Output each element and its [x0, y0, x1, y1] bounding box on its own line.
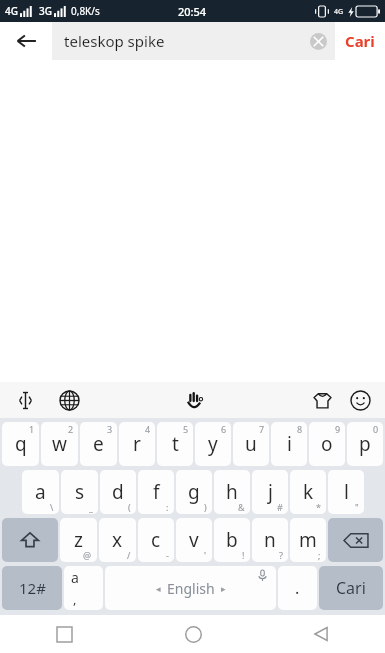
staticText: 2 [68, 423, 74, 435]
staticText: # [277, 501, 283, 513]
staticText: m [299, 527, 317, 553]
button[interactable]: Back [0, 22, 52, 60]
staticText: g [188, 479, 200, 505]
button[interactable]: f [138, 470, 174, 514]
button[interactable]: m [290, 518, 326, 562]
staticText: c [151, 527, 161, 553]
button[interactable]: Clear [301, 24, 335, 58]
button[interactable]: w [41, 422, 78, 466]
button[interactable]: . [278, 566, 317, 610]
staticText: \ [50, 501, 54, 513]
button[interactable]: a [64, 566, 103, 610]
button[interactable]: a [22, 470, 59, 514]
button[interactable]: u [233, 422, 269, 466]
staticText: n [264, 527, 276, 553]
staticText: / [127, 549, 131, 561]
button[interactable]: Backspace [328, 518, 383, 562]
button[interactable]: Cari [345, 22, 375, 60]
staticText: 3G [39, 4, 52, 18]
button[interactable]: k [290, 470, 326, 514]
staticText: ; [318, 549, 321, 561]
button[interactable]: Emoji [345, 385, 375, 415]
staticText: & [238, 501, 245, 513]
staticText: 8 [297, 423, 303, 435]
staticText: ◂ [156, 584, 161, 594]
button[interactable]: v [176, 518, 212, 562]
staticText: , [73, 590, 77, 608]
button[interactable]: b [214, 518, 250, 562]
button[interactable]: j [252, 470, 288, 514]
staticText: r [133, 431, 141, 457]
button[interactable]: c [138, 518, 174, 562]
staticText: 5 [183, 423, 189, 435]
button[interactable]: s [61, 470, 98, 514]
staticText: z [74, 527, 83, 553]
button[interactable]: Cursor [10, 385, 40, 415]
button[interactable]: Space [105, 566, 276, 610]
button[interactable]: Home [129, 615, 257, 653]
staticText: - [166, 549, 169, 561]
staticText: 3 [107, 423, 113, 435]
button[interactable]: p [347, 422, 383, 466]
staticText: ▸ [221, 584, 226, 594]
staticText: a [71, 568, 79, 587]
button[interactable]: Theme [307, 385, 337, 415]
staticText: ) [204, 501, 207, 513]
button[interactable]: teleskop spike [52, 22, 335, 60]
button[interactable]: q [2, 422, 39, 466]
staticText: 4 [145, 423, 151, 435]
button[interactable]: h [214, 470, 250, 514]
button[interactable]: Language [54, 385, 84, 415]
button[interactable]: Cari [319, 566, 383, 610]
button[interactable]: d [100, 470, 136, 514]
staticText: 1 [29, 423, 35, 435]
staticText: 4G [5, 4, 18, 18]
staticText: : [166, 501, 169, 513]
staticText: 6 [221, 423, 227, 435]
button[interactable]: z [60, 518, 97, 562]
staticText: ' [204, 549, 207, 561]
staticText: _ [89, 501, 93, 513]
staticText: . [295, 577, 300, 599]
staticText: s [75, 479, 85, 505]
staticText: 12# [19, 578, 46, 598]
button[interactable]: Back [257, 615, 385, 653]
button[interactable]: g [176, 470, 212, 514]
staticText: ( [128, 501, 131, 513]
staticText: k [303, 479, 314, 505]
staticText: q [15, 431, 27, 457]
staticText: ! [242, 549, 245, 561]
staticText: w [52, 431, 67, 457]
staticText: d [112, 479, 124, 505]
button[interactable]: e [80, 422, 117, 466]
button[interactable]: i [271, 422, 307, 466]
button[interactable]: Recents [0, 615, 129, 653]
button[interactable]: Shift [2, 518, 58, 562]
staticText: b [226, 527, 238, 553]
button[interactable]: 12# [2, 566, 62, 610]
staticText: 0,8K/s [71, 4, 100, 18]
staticText: " [355, 501, 359, 513]
staticText: Cari [336, 577, 366, 599]
button[interactable]: y [195, 422, 231, 466]
staticText: @ [83, 549, 92, 561]
button[interactable]: r [119, 422, 155, 466]
staticText: u [245, 431, 257, 457]
staticText: v [189, 527, 199, 553]
button[interactable]: l [328, 470, 364, 514]
staticText: a [35, 479, 46, 505]
staticText: p [359, 431, 371, 457]
button[interactable]: n [252, 518, 288, 562]
button[interactable]: Gesture [180, 385, 210, 415]
button[interactable]: t [157, 422, 193, 466]
staticText: i [287, 431, 292, 457]
button[interactable]: x [99, 518, 136, 562]
staticText: ? [279, 549, 283, 561]
staticText: o [321, 431, 333, 457]
button[interactable]: o [309, 422, 345, 466]
staticText: y [208, 431, 218, 457]
staticText: l [344, 479, 349, 505]
staticText: h [226, 479, 238, 505]
staticText: x [112, 527, 123, 553]
staticText: t [172, 431, 179, 457]
